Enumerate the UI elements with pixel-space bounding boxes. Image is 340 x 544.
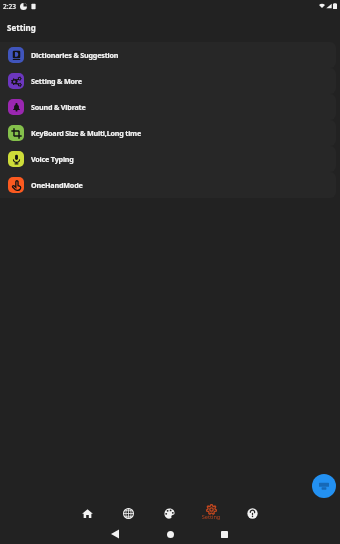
staticText: 2:23 xyxy=(3,2,16,11)
button[interactable]: Recents xyxy=(215,527,233,541)
button[interactable]: OneHandMode xyxy=(0,172,336,198)
staticText: Setting xyxy=(7,22,36,33)
button[interactable]: Theme xyxy=(156,500,182,526)
button[interactable]: KeyBoard Size & Multi,Long time xyxy=(0,120,336,146)
button[interactable]: Help xyxy=(239,500,265,526)
button[interactable]: Setting xyxy=(198,500,224,526)
staticText: Setting xyxy=(198,513,224,521)
button[interactable]: Language xyxy=(115,500,141,526)
staticText: KeyBoard Size & Multi,Long time xyxy=(31,128,142,138)
staticText: Dictionaries & Suggestion xyxy=(31,50,119,60)
button[interactable]: Home xyxy=(74,500,100,526)
button[interactable]: Voice Typing xyxy=(0,146,336,172)
staticText: Voice Typing xyxy=(31,154,74,164)
button[interactable]: Open keyboard xyxy=(312,474,336,498)
button[interactable]: Dictionaries & Suggestion xyxy=(0,42,336,68)
staticText: OneHandMode xyxy=(31,180,83,190)
button[interactable]: Home xyxy=(161,527,179,541)
button[interactable]: Sound & Vibrate xyxy=(0,94,336,120)
button[interactable]: Setting & More xyxy=(0,68,336,94)
staticText: Sound & Vibrate xyxy=(31,102,86,112)
button[interactable]: Back xyxy=(106,527,124,541)
staticText: Setting & More xyxy=(31,76,82,86)
